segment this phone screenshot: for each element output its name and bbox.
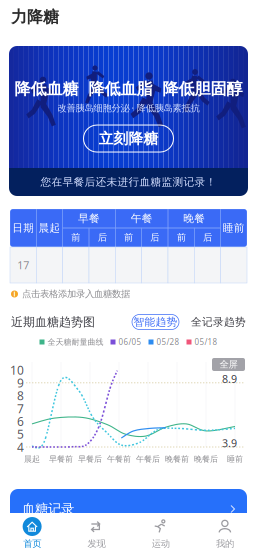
staticText: 改善胰岛细胞分泌 · 降低胰岛素抵抗 xyxy=(57,102,199,114)
staticText: 力降糖 xyxy=(11,7,59,27)
button[interactable]: 我的 xyxy=(193,513,257,550)
staticText: 全天糖耐量曲线 xyxy=(47,337,103,347)
staticText: 晨起 xyxy=(24,454,40,464)
staticText: 睡前 xyxy=(227,454,243,464)
button[interactable]: 智能趋势 xyxy=(132,314,179,329)
button[interactable]: 首页 xyxy=(0,513,64,550)
button[interactable] xyxy=(89,247,115,283)
staticText: 睡前 xyxy=(223,221,245,234)
staticText: 后 xyxy=(98,232,107,243)
staticText: 点击表格添加录入血糖数据 xyxy=(22,288,130,300)
staticText: 日期 xyxy=(12,221,34,234)
button[interactable] xyxy=(194,247,221,283)
staticText: 06/05 xyxy=(118,337,141,347)
staticText: 智能趋势 xyxy=(133,315,177,328)
button[interactable] xyxy=(168,247,194,283)
staticText: 17 xyxy=(17,258,29,272)
staticText: 后 xyxy=(150,232,159,243)
button[interactable] xyxy=(221,247,247,283)
staticText: 运动 xyxy=(152,538,170,549)
button[interactable]: 17 xyxy=(10,247,36,283)
staticText: 首页 xyxy=(23,538,41,549)
button[interactable]: 血糖记录 xyxy=(10,489,247,529)
staticText: 早餐后 xyxy=(78,454,102,464)
button[interactable]: 运动 xyxy=(128,513,193,550)
staticText: 4 xyxy=(17,439,24,455)
staticText: 05/18 xyxy=(194,337,217,347)
staticText: 晚餐后 xyxy=(194,454,218,464)
staticText: 3.9 xyxy=(222,436,237,450)
staticText: 发现 xyxy=(87,538,105,549)
staticText: 05/28 xyxy=(156,337,179,347)
button[interactable]: 发现 xyxy=(64,513,128,550)
staticText: 8 xyxy=(17,388,24,404)
staticText: 前 xyxy=(71,232,80,243)
staticText: 降低血糖 降低血脂 降低胆固醇 xyxy=(14,79,242,99)
staticText: 近期血糖趋势图 xyxy=(11,315,95,329)
staticText: 立刻降糖 xyxy=(98,129,158,147)
staticText: 午餐前 xyxy=(107,454,131,464)
button[interactable] xyxy=(36,247,63,283)
staticText: 早餐 xyxy=(78,212,100,225)
staticText: 我的 xyxy=(216,538,234,549)
button[interactable] xyxy=(63,247,89,283)
staticText: 7 xyxy=(17,400,24,416)
button[interactable] xyxy=(115,247,142,283)
staticText: 9 xyxy=(17,375,24,391)
staticText: 前 xyxy=(177,232,186,243)
staticText: 6 xyxy=(17,413,24,429)
staticText: 您在早餐后还未进行血糖监测记录！ xyxy=(40,175,216,188)
button[interactable]: 全记录趋势 xyxy=(191,314,246,329)
staticText: 晚餐前 xyxy=(165,454,189,464)
staticText: i xyxy=(13,290,15,298)
button[interactable]: 力降糖 xyxy=(11,9,59,25)
staticText: 晨起 xyxy=(38,221,60,234)
staticText: 早餐前 xyxy=(49,454,73,464)
button[interactable] xyxy=(142,247,168,283)
staticText: 血糖记录 xyxy=(22,501,74,517)
staticText: 5 xyxy=(17,426,24,442)
button[interactable]: 立刻降糖 xyxy=(83,125,173,152)
staticText: 午餐后 xyxy=(136,454,160,464)
staticText: 午餐 xyxy=(131,212,153,225)
staticText: 全记录趋势 xyxy=(191,315,246,328)
staticText: 后 xyxy=(203,232,212,243)
staticText: 前 xyxy=(124,232,133,243)
button[interactable]: 全屏 xyxy=(212,358,245,371)
staticText: 全屏 xyxy=(219,359,237,370)
staticText: 8.9 xyxy=(222,372,237,386)
staticText: 10 xyxy=(10,362,24,378)
staticText: 晚餐 xyxy=(183,212,205,225)
